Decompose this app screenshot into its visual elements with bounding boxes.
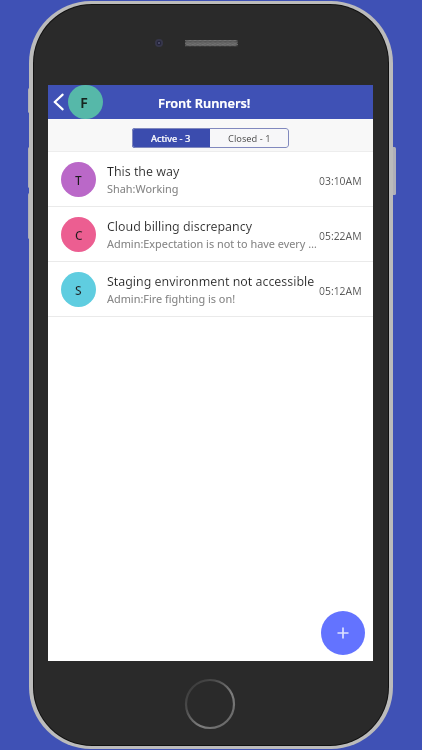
staticText: 05:12AM	[319, 284, 362, 298]
staticText: Shah:Working	[107, 181, 179, 196]
button[interactable]: Back	[48, 85, 69, 119]
staticText: This the way	[107, 163, 180, 180]
button[interactable]: S	[48, 262, 373, 316]
staticText: Admin:Fire fighting is on!	[107, 291, 236, 306]
staticText: C	[75, 227, 83, 243]
staticText: T	[75, 172, 82, 188]
button[interactable]: C	[48, 207, 373, 261]
button[interactable]: New conversation	[321, 611, 365, 655]
staticText: Admin:Expectation is not to have every …	[107, 236, 317, 251]
button[interactable]: T	[48, 152, 373, 206]
staticText: Cloud billing discrepancy	[107, 218, 252, 235]
staticText: S	[75, 282, 82, 298]
staticText: Staging environment not accessible	[107, 273, 315, 290]
button[interactable]: Active - 3	[132, 128, 210, 148]
staticText: 03:10AM	[319, 174, 362, 188]
staticText: Front Runners!	[158, 94, 251, 111]
button[interactable]: Closed - 1	[210, 128, 289, 148]
button[interactable]: F	[68, 85, 103, 119]
staticText: Active - 3	[151, 132, 191, 145]
staticText: 05:22AM	[319, 229, 362, 243]
staticText: Closed - 1	[228, 132, 271, 145]
staticText: F	[80, 92, 88, 112]
